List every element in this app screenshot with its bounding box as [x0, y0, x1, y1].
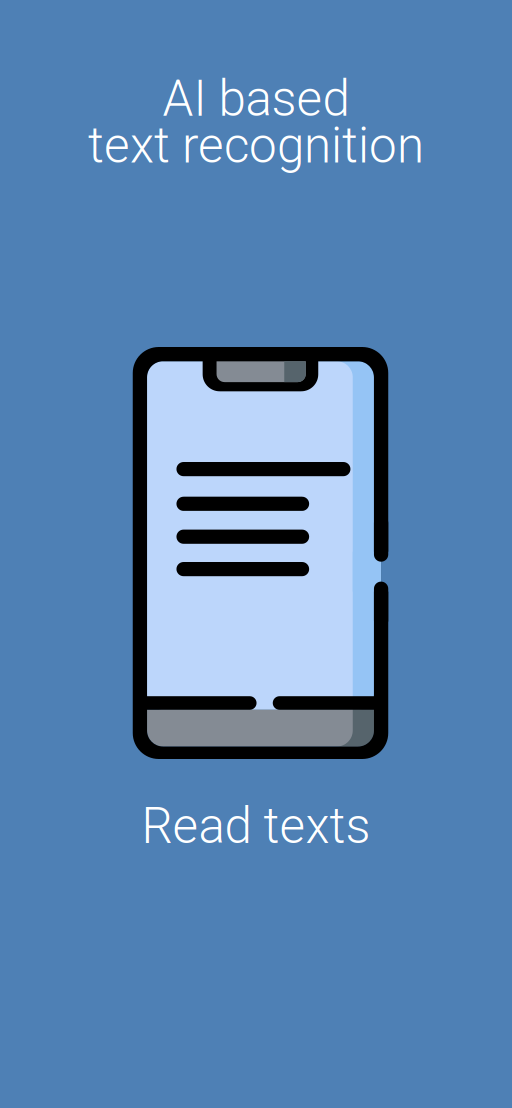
staticText: AI based: [162, 70, 349, 128]
staticText: text recognition: [88, 117, 424, 175]
staticText: Read texts: [141, 797, 370, 855]
